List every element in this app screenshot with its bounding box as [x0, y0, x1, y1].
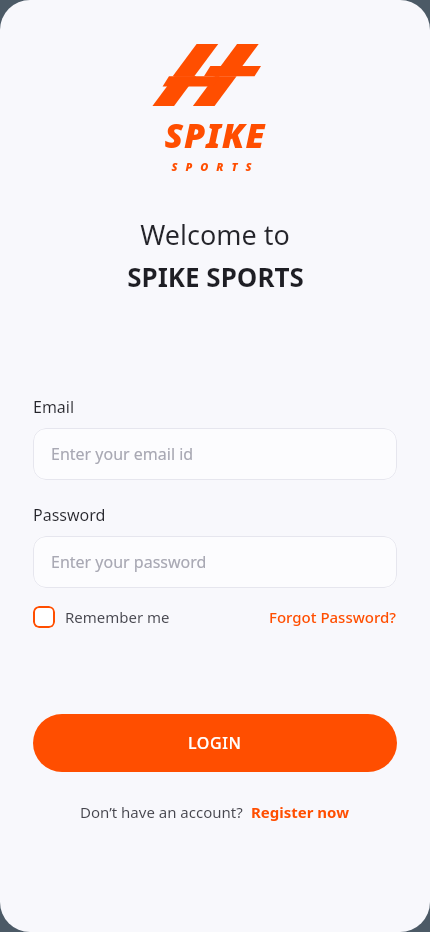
staticText: SPORTS [171, 159, 260, 174]
staticText: Password [33, 504, 106, 526]
staticText: Remember me [65, 607, 170, 627]
button[interactable]: Register now [251, 800, 350, 824]
staticText: SPIKE [164, 112, 266, 158]
staticText: Enter your password [51, 551, 207, 573]
button[interactable]: LOGIN [33, 714, 397, 772]
staticText: LOGIN [188, 732, 242, 754]
button[interactable]: Forgot Password? [269, 605, 397, 629]
button[interactable]: Enter your password [33, 536, 397, 588]
staticText: Welcome to [140, 216, 290, 253]
staticText: SPIKE SPORTS [127, 259, 304, 294]
staticText: Enter your email id [51, 443, 194, 465]
staticText: Register now [251, 802, 350, 822]
staticText: Email [33, 396, 75, 418]
staticText: Don’t have an account? [80, 802, 243, 822]
staticText: Forgot Password? [269, 607, 397, 627]
button[interactable]: Enter your email id [33, 428, 397, 480]
button[interactable]: Remember me [33, 604, 170, 630]
